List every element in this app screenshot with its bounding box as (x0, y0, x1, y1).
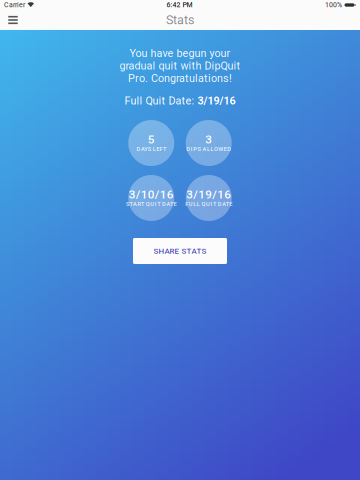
staticText: 6:42 PM (166, 1, 192, 9)
staticText: Stats (166, 13, 194, 27)
staticText: You have begun your (129, 47, 230, 60)
staticText: gradual quit with DipQuit (119, 59, 240, 72)
staticText: FULL QUIT DATE (185, 201, 232, 207)
staticText: 3 (205, 132, 212, 146)
button[interactable]: SHARE STATS (133, 238, 227, 264)
staticText: 100% (325, 1, 342, 9)
staticText: 3/19/16 (186, 187, 231, 201)
staticText: DAYS LEFT (136, 146, 166, 152)
staticText: START QUIT DATE (126, 201, 176, 207)
staticText: DIPS ALLOWED (186, 146, 231, 152)
staticText: 5 (148, 132, 155, 146)
button[interactable]: Menu (0, 10, 26, 30)
staticText: SHARE STATS (153, 246, 206, 256)
staticText: 3/10/16 (129, 187, 174, 201)
staticText: Carrier (4, 1, 25, 9)
staticText: Full Quit Date: 3/19/16 (124, 95, 235, 107)
staticText: Pro. Congratulations! (128, 72, 232, 85)
